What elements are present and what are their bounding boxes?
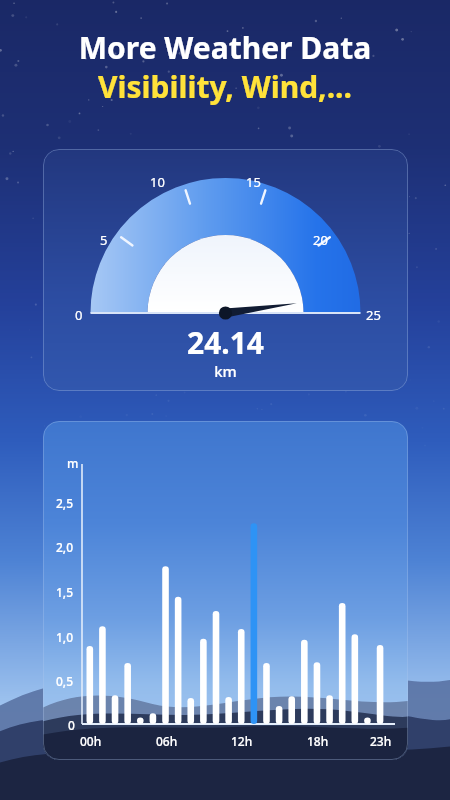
staticText: 1,5	[56, 584, 74, 600]
staticText: 20	[313, 231, 328, 249]
staticText: 10	[150, 173, 165, 191]
staticText: 0	[68, 717, 75, 733]
staticText: 00h	[80, 733, 102, 749]
staticText: 0	[75, 306, 83, 324]
staticText: 15	[246, 173, 261, 191]
staticText: 23h	[370, 733, 392, 749]
staticText: 12h	[231, 733, 253, 749]
staticText: m	[67, 455, 79, 471]
staticText: km	[43, 361, 408, 381]
staticText: 18h	[307, 733, 329, 749]
staticText: 5	[100, 231, 108, 249]
staticText: 25	[366, 306, 381, 324]
staticText: 2,5	[56, 495, 74, 511]
button[interactable]: Visibility gauge 24.14 km	[43, 149, 408, 391]
staticText: 24.14	[43, 322, 408, 363]
staticText: 1,0	[56, 629, 74, 645]
staticText: 0,5	[56, 673, 74, 689]
staticText: More Weather Data Visibility, Wind,...	[8, 27, 442, 106]
staticText: 2,0	[56, 539, 74, 555]
button[interactable]: Hourly visibility bar chart	[43, 421, 408, 760]
staticText: 06h	[156, 733, 178, 749]
